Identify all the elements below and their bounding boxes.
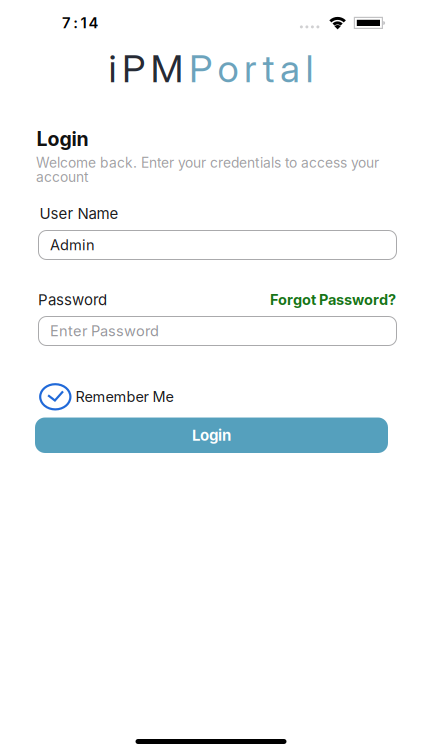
staticText: l — [305, 45, 313, 91]
staticText: Enter Password — [50, 322, 159, 340]
staticText: M — [150, 45, 183, 91]
button[interactable]: Remember Me — [39, 383, 174, 411]
staticText: Login — [192, 426, 231, 444]
staticText: Remember Me — [76, 388, 174, 405]
button[interactable]: Forgot Password? — [270, 291, 396, 308]
staticText: t — [262, 45, 274, 91]
staticText: 4 — [89, 14, 99, 32]
button[interactable]: Login — [35, 417, 388, 453]
staticText: 7 — [62, 14, 71, 32]
button[interactable]: Admin — [38, 230, 397, 260]
staticText: 1 — [80, 14, 86, 32]
staticText: Password — [38, 291, 107, 309]
staticText: o — [217, 45, 238, 91]
staticText: i — [108, 45, 116, 91]
staticText: Forgot Password? — [270, 291, 396, 308]
staticText: r — [244, 45, 257, 91]
staticText: a — [280, 45, 300, 91]
staticText: Admin — [50, 236, 95, 254]
staticText: account — [36, 169, 89, 185]
staticText: P — [189, 45, 212, 91]
staticText: Login — [36, 127, 88, 151]
staticText: : — [73, 14, 78, 32]
staticText: P — [122, 45, 145, 91]
staticText: Welcome back. Enter your credentials to … — [36, 154, 379, 171]
staticText: User Name — [39, 204, 118, 223]
button[interactable]: Enter Password — [38, 316, 397, 346]
